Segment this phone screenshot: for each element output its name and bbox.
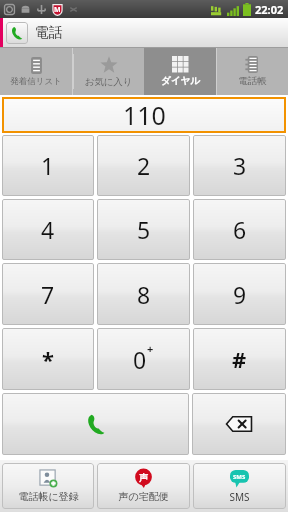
staticText: * xyxy=(42,344,54,374)
staticText: 8 xyxy=(137,279,151,310)
staticText: 2 xyxy=(137,150,151,181)
staticText: + xyxy=(147,341,154,356)
button[interactable] xyxy=(192,393,286,455)
staticText: 電話 xyxy=(35,24,63,42)
staticText: 7 xyxy=(41,279,55,310)
button[interactable]: SMS xyxy=(193,463,286,509)
button[interactable]: 電話帳に登録 xyxy=(2,463,94,509)
button[interactable]: お気に入り xyxy=(73,48,144,95)
staticText: 5 xyxy=(137,214,151,245)
button[interactable]: 4 xyxy=(2,199,94,260)
staticText: 22:02 xyxy=(255,2,284,17)
button[interactable]: 110 xyxy=(2,97,286,133)
staticText: 4 xyxy=(41,214,55,245)
button[interactable]: 8 xyxy=(97,263,190,325)
button[interactable]: 9 xyxy=(193,263,286,325)
staticText: 6 xyxy=(233,214,247,245)
staticText: M xyxy=(54,5,61,15)
staticText: SMS xyxy=(233,473,246,481)
button[interactable]: 電話帳 xyxy=(217,48,288,95)
staticText: 3 xyxy=(233,150,247,181)
button[interactable]: 1 xyxy=(2,135,94,196)
other: Call xyxy=(2,393,189,455)
staticText: 電話帳 xyxy=(238,75,267,87)
other: Delete xyxy=(192,393,286,455)
staticText: ダイヤル xyxy=(161,75,200,87)
staticText: 9 xyxy=(233,279,247,310)
staticText: SMS xyxy=(229,490,250,504)
staticText: 電話帳に登録 xyxy=(18,490,79,503)
staticText: 110 xyxy=(123,98,166,132)
staticText: 声 xyxy=(139,472,148,483)
button[interactable]: 2 xyxy=(97,135,190,196)
staticText: # xyxy=(232,344,247,374)
button[interactable]: 3 xyxy=(193,135,286,196)
button[interactable]: ダイヤル xyxy=(145,48,216,95)
button[interactable]: * xyxy=(2,328,94,390)
button[interactable]: 発着信リスト xyxy=(0,48,72,95)
button[interactable]: 0 xyxy=(97,328,190,390)
staticText: 1 xyxy=(41,150,55,181)
button[interactable]: 5 xyxy=(97,199,190,260)
button[interactable]: 声 xyxy=(97,463,190,509)
staticText: 発着信リスト xyxy=(10,76,62,87)
button[interactable]: 6 xyxy=(193,199,286,260)
staticText: お気に入り xyxy=(84,76,133,88)
button[interactable] xyxy=(2,393,189,455)
button[interactable]: 7 xyxy=(2,263,94,325)
staticText: 0 xyxy=(133,344,147,375)
staticText: 声の宅配便 xyxy=(118,490,169,503)
button[interactable]: # xyxy=(193,328,286,390)
